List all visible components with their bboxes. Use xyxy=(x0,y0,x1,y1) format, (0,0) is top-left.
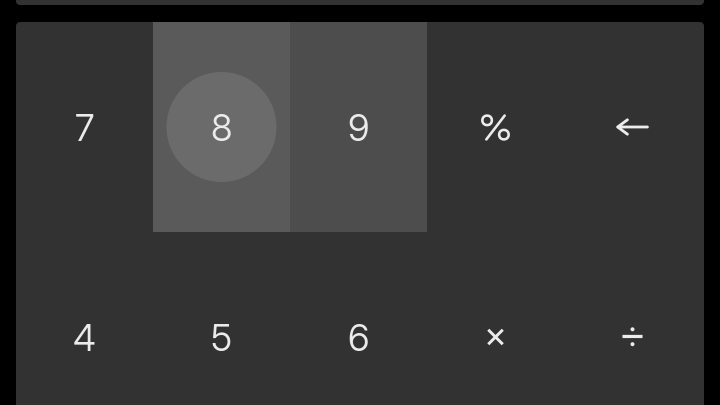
staticText: 7 xyxy=(75,105,94,150)
staticText: 8 xyxy=(211,105,232,150)
button[interactable]: Multiply xyxy=(427,232,564,405)
button[interactable]: 6 xyxy=(290,232,427,405)
button[interactable]: Divide xyxy=(564,232,701,405)
button[interactable]: 9 xyxy=(290,22,427,232)
staticText: 9 xyxy=(348,105,369,150)
staticText: 6 xyxy=(348,315,369,360)
button[interactable]: 5 xyxy=(153,232,290,405)
button[interactable]: 8 xyxy=(153,22,290,232)
button[interactable]: 7 xyxy=(16,22,153,232)
button[interactable]: Percent xyxy=(427,22,564,232)
staticText: 5 xyxy=(211,315,232,360)
button[interactable]: 4 xyxy=(16,232,153,405)
staticText: 4 xyxy=(73,315,96,360)
button[interactable]: Backspace xyxy=(564,22,701,232)
